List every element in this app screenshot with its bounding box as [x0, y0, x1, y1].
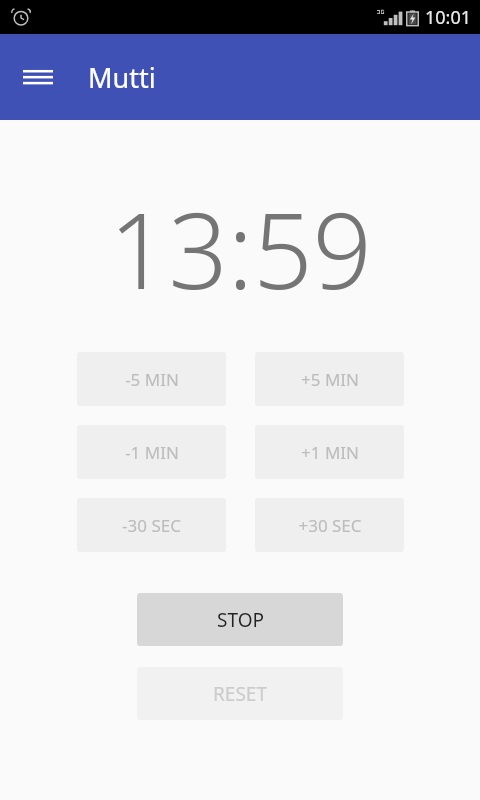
staticText: Mutti	[88, 59, 156, 96]
staticText: 13:59	[109, 178, 372, 320]
staticText: -1 MIN	[125, 441, 179, 464]
staticText: +1 MIN	[301, 441, 359, 464]
button[interactable]: +1 MIN	[255, 425, 404, 479]
button[interactable]: +30 SEC	[255, 498, 404, 552]
button[interactable]: -5 MIN	[77, 352, 226, 406]
staticText: STOP	[217, 607, 264, 633]
button[interactable]: STOP	[137, 593, 343, 646]
staticText: RESET	[213, 681, 267, 707]
button[interactable]: RESET	[137, 667, 343, 720]
button[interactable]: -1 MIN	[77, 425, 226, 479]
staticText: 10:01	[425, 5, 472, 30]
staticText: -30 SEC	[122, 514, 181, 537]
button[interactable]: +5 MIN	[255, 352, 404, 406]
staticText: -5 MIN	[125, 368, 179, 391]
staticText: +30 SEC	[298, 514, 362, 537]
staticText: +5 MIN	[301, 368, 359, 391]
button[interactable]: Open navigation menu	[16, 55, 60, 99]
button[interactable]: -30 SEC	[77, 498, 226, 552]
